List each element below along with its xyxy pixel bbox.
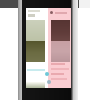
button[interactable] <box>26 41 45 62</box>
button[interactable] <box>26 20 45 41</box>
button[interactable] <box>51 41 70 62</box>
button[interactable] <box>26 8 45 20</box>
button[interactable] <box>51 20 70 41</box>
button[interactable] <box>48 8 71 20</box>
